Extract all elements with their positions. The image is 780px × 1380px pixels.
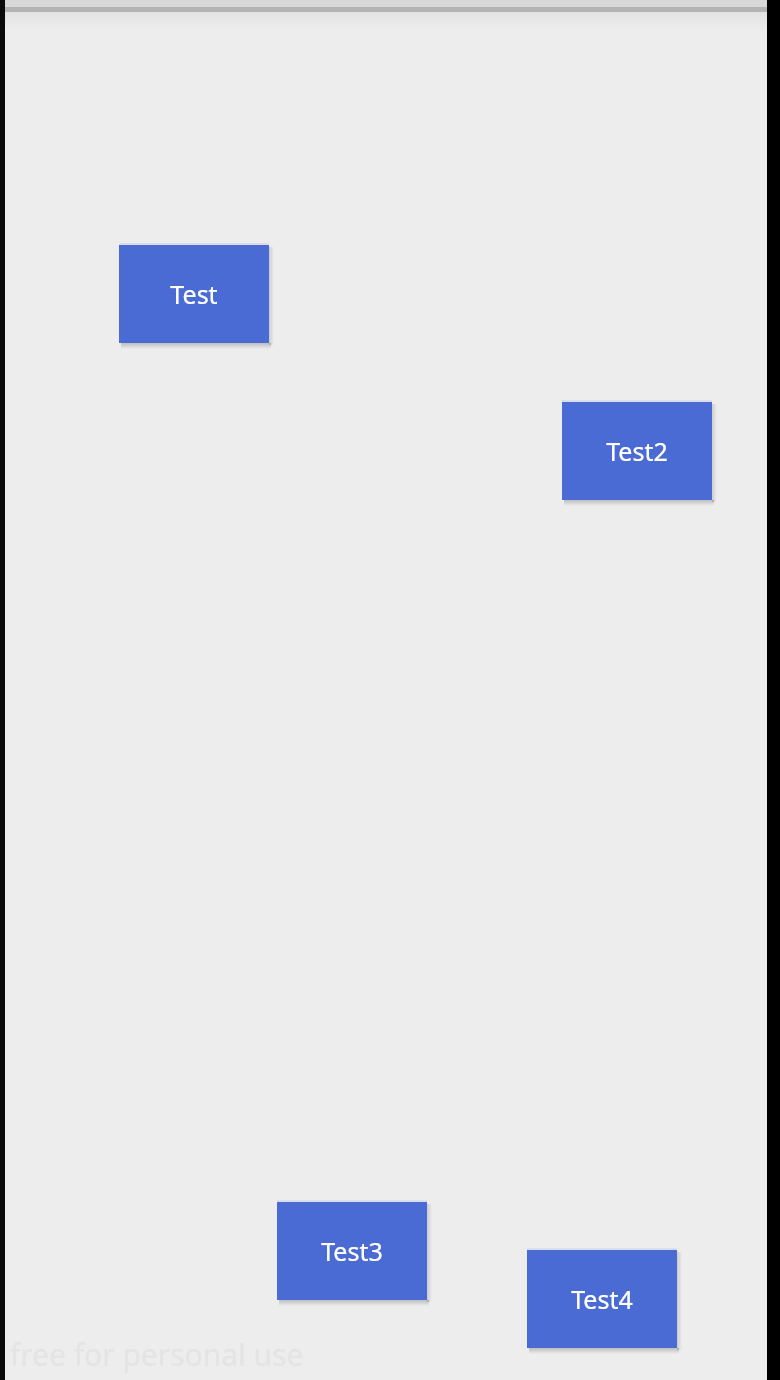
button[interactable]: Test3 xyxy=(277,1202,427,1300)
staticText: free for personal use xyxy=(10,1334,304,1375)
staticText: Test xyxy=(170,277,218,311)
button[interactable]: Test2 xyxy=(562,402,712,500)
button[interactable]: Test xyxy=(119,245,269,343)
button[interactable]: Test4 xyxy=(527,1250,677,1348)
staticText: Test2 xyxy=(606,434,668,468)
staticText: Test4 xyxy=(571,1282,633,1316)
staticText: Test3 xyxy=(321,1234,383,1268)
